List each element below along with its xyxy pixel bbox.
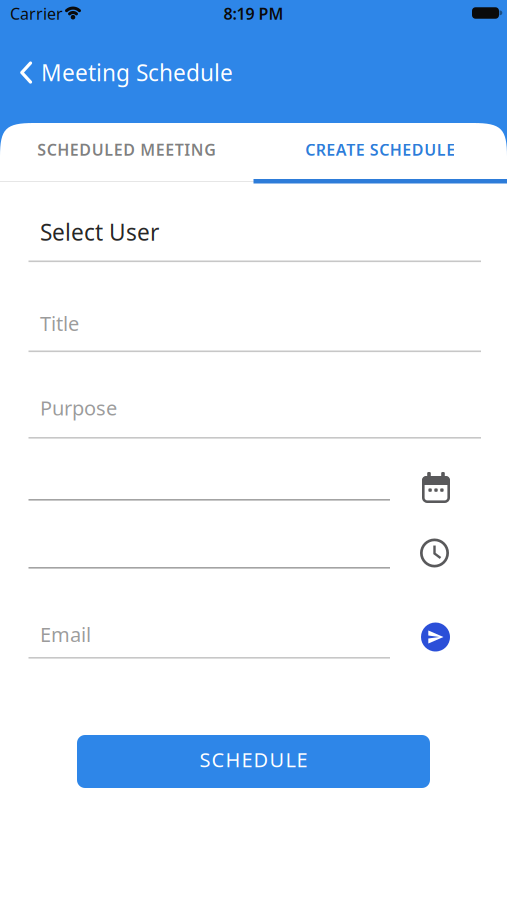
button[interactable]: Select User [28, 214, 481, 261]
button[interactable]: Pick date [422, 470, 450, 501]
staticText: Select User [40, 217, 159, 247]
staticText: CREATE SCHEDULE [305, 139, 455, 160]
button[interactable]: CREATE SCHEDULE [253, 121, 507, 177]
button[interactable]: Pick time [420, 538, 449, 567]
staticText: Title [40, 310, 79, 337]
staticText: SCHEDULE [199, 746, 307, 773]
staticText: Email [40, 621, 91, 648]
staticText: SCHEDULED MEETING [37, 139, 216, 160]
button[interactable]: SCHEDULE [77, 735, 430, 788]
button[interactable]: Send invite [421, 622, 450, 651]
button[interactable]: Back [20, 57, 233, 88]
button[interactable]: SCHEDULED MEETING [0, 121, 253, 177]
staticText: Purpose [40, 394, 117, 421]
staticText: 8:19 PM [223, 3, 283, 24]
staticText: Meeting Schedule [41, 57, 233, 88]
staticText: Carrier [10, 3, 63, 24]
